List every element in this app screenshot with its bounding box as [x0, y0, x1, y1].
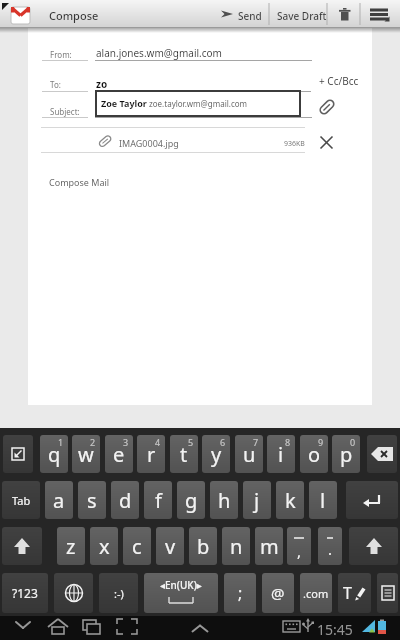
button[interactable]: l [309, 481, 337, 519]
button[interactable] [3, 435, 33, 473]
button[interactable]: z [57, 527, 85, 565]
button[interactable] [346, 481, 398, 519]
button[interactable]: g [177, 481, 205, 519]
staticText: + Cc/Bcc [319, 74, 359, 88]
button[interactable]: ?123 [2, 573, 48, 613]
staticText: 5 [188, 436, 194, 448]
staticText: To: [50, 79, 61, 90]
button[interactable]: .com [300, 573, 332, 613]
button[interactable]: q [40, 435, 68, 473]
button[interactable]: x [90, 527, 118, 565]
staticText: 15:45 [317, 620, 353, 639]
button[interactable]: n [222, 527, 250, 565]
button[interactable] [377, 573, 398, 613]
button[interactable]: Tab [2, 481, 40, 519]
staticText: alan.jones.wm@gmail.com [96, 46, 222, 60]
staticText: Compose Mail [49, 176, 110, 188]
staticText: T [343, 582, 352, 604]
button[interactable]: i [267, 435, 295, 473]
staticText: b [197, 533, 210, 560]
staticText: .com [303, 586, 329, 601]
staticText: 6 [220, 436, 226, 448]
button[interactable]: t [170, 435, 198, 473]
button[interactable]: @ [262, 573, 294, 613]
button[interactable]: o [300, 435, 328, 473]
button[interactable]: d [111, 481, 139, 519]
staticText: q [48, 441, 61, 468]
staticText: @ [271, 583, 285, 603]
button[interactable]: c [123, 527, 151, 565]
staticText: IMAG0004.jpg [119, 137, 179, 149]
staticText: Send [238, 9, 262, 23]
staticText: u [243, 441, 256, 468]
button[interactable] [215, 0, 269, 28]
button[interactable]: s [78, 481, 106, 519]
staticText: Compose [49, 8, 99, 23]
button[interactable]: , [287, 527, 311, 565]
button[interactable] [8, 616, 40, 640]
staticText: ◂En(UK)▸ [160, 578, 202, 592]
button[interactable]: h [210, 481, 238, 519]
button[interactable]: . [318, 527, 342, 565]
button[interactable] [54, 573, 93, 613]
button[interactable]: T [338, 573, 371, 613]
button[interactable] [42, 66, 312, 92]
staticText: :-) [114, 586, 124, 601]
staticText: z [66, 533, 76, 560]
button[interactable] [349, 527, 398, 565]
staticText: Save Draft [277, 9, 327, 23]
staticText: 3 [123, 436, 129, 448]
button[interactable] [314, 68, 362, 88]
button[interactable] [110, 616, 142, 640]
button[interactable]: j [243, 481, 271, 519]
button[interactable]: a [45, 481, 73, 519]
button[interactable]: f [144, 481, 172, 519]
button[interactable] [2, 527, 42, 565]
button[interactable]: m [255, 527, 283, 565]
staticText: j [254, 487, 260, 514]
button[interactable]: v [156, 527, 184, 565]
staticText: zo [96, 77, 108, 91]
staticText: From: [50, 49, 72, 60]
button[interactable] [367, 435, 397, 473]
staticText: o [308, 441, 321, 468]
button[interactable]: ◂En(UK)▸ [144, 573, 218, 613]
button[interactable] [42, 36, 312, 62]
button[interactable]: q [0, 428, 400, 616]
staticText: zoe.taylor.wm@gmail.com [149, 98, 248, 109]
button[interactable] [42, 96, 292, 120]
staticText: ?123 [12, 585, 38, 601]
staticText: v [165, 533, 176, 560]
staticText: 0 [350, 436, 356, 448]
staticText: t [180, 441, 188, 468]
button[interactable]: k [276, 481, 304, 519]
button[interactable]: p [332, 435, 360, 473]
button[interactable]: w [72, 435, 100, 473]
button[interactable]: ; [224, 573, 256, 613]
staticText: w [78, 441, 94, 468]
button[interactable] [270, 0, 327, 28]
staticText: 936KB [284, 139, 305, 149]
staticText: ; [238, 582, 243, 604]
staticText: s [87, 487, 97, 514]
button[interactable] [361, 0, 400, 28]
staticText: a [53, 487, 65, 514]
staticText: d [119, 487, 132, 514]
staticText: l [320, 487, 326, 514]
button[interactable]: y [202, 435, 230, 473]
button[interactable] [320, 136, 333, 149]
button[interactable] [44, 616, 74, 640]
button[interactable]: b [189, 527, 217, 565]
button[interactable] [313, 93, 341, 121]
button[interactable]: :-) [99, 573, 138, 613]
button[interactable]: u [235, 435, 263, 473]
staticText: k [285, 487, 296, 514]
button[interactable] [328, 0, 360, 28]
button[interactable]: Zoe Taylor [95, 90, 301, 117]
button[interactable]: e [105, 435, 133, 473]
button[interactable]: r [137, 435, 165, 473]
staticText: 2 [90, 436, 96, 448]
button[interactable] [78, 616, 106, 640]
staticText: i [278, 441, 284, 468]
staticText: y [211, 441, 222, 468]
